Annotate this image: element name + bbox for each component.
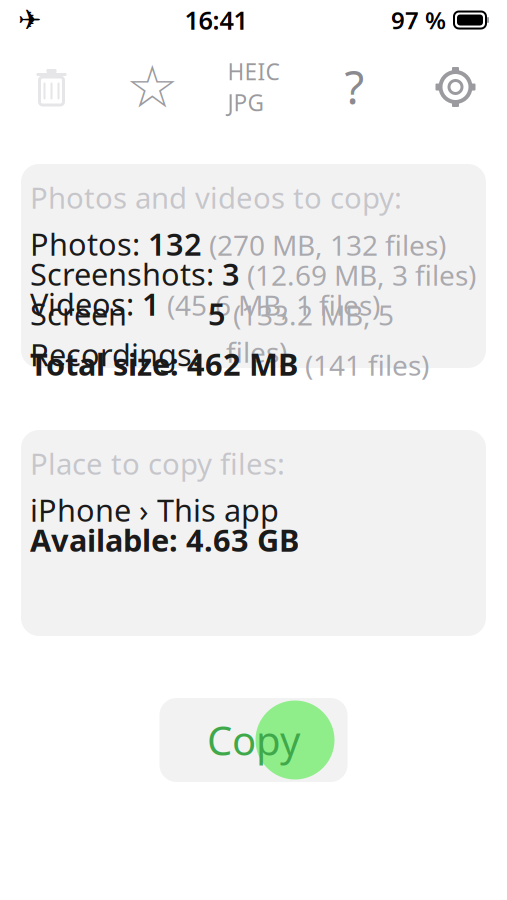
staticText: (12.69 MB, 3 files) [240, 256, 476, 294]
staticText: (141 files) [305, 346, 429, 384]
button[interactable]: Copy [159, 698, 347, 782]
staticText: Available: 4.63 GB [30, 520, 299, 560]
staticText: ? [344, 57, 364, 117]
staticText: 5 [200, 293, 226, 334]
staticText: (45.6 MB, 1 files) [160, 286, 380, 324]
staticText: JPG [227, 87, 264, 118]
staticText: Total size: 462 MB [30, 344, 298, 384]
staticText: ✈ [18, 4, 41, 36]
staticText: (133.2 MB, 5 files) [226, 296, 394, 370]
button[interactable]: Help [304, 48, 405, 126]
staticText: Photos: [30, 224, 140, 264]
staticText: Videos: [30, 284, 134, 324]
staticText: 97 % [391, 4, 446, 36]
staticText: 132 [140, 224, 202, 264]
button[interactable]: Settings [405, 48, 506, 126]
staticText: 1 [134, 284, 160, 324]
staticText: 16:41 [184, 3, 247, 37]
staticText: Screenshots: [30, 254, 214, 294]
staticText: 3 [214, 254, 240, 294]
staticText: (270 MB, 132 files) [202, 226, 446, 264]
button[interactable]: Favorite [102, 48, 203, 126]
staticText: Copy [207, 713, 300, 766]
staticText: Photos and videos to copy: [30, 178, 402, 217]
button[interactable]: Format HEIC or JPG [203, 48, 304, 126]
button[interactable]: Delete [1, 48, 102, 126]
staticText: ☆ [126, 54, 179, 120]
staticText: HEIC [227, 56, 279, 86]
staticText: iPhone › This app [30, 490, 279, 530]
staticText: Place to copy files: [30, 444, 285, 483]
staticText: Screen Recordings: [30, 293, 200, 375]
